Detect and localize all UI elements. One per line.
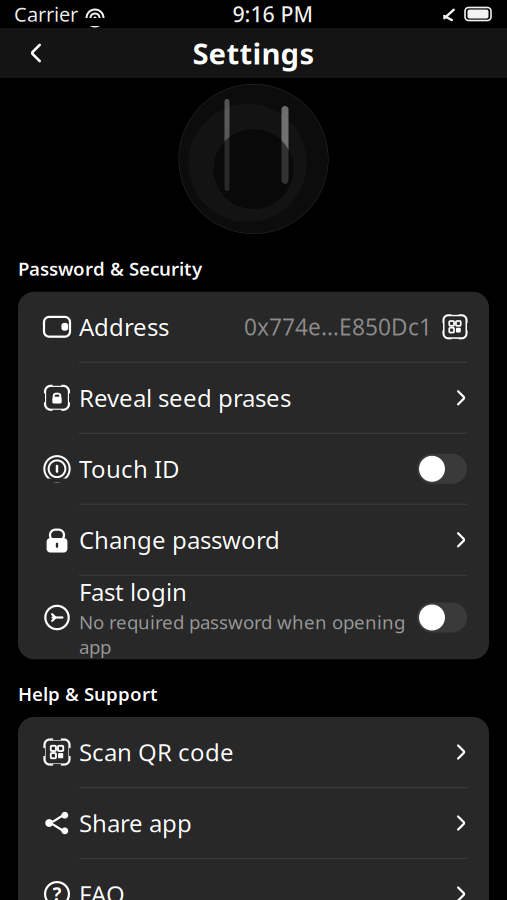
staticText: FAQ [79, 878, 125, 900]
staticText: 9:16 PM [232, 0, 313, 28]
staticText: ? [52, 882, 61, 900]
button[interactable]: Back [14, 31, 58, 75]
button[interactable]: Fast login [18, 576, 489, 659]
staticText: Help & Support [18, 681, 158, 706]
staticText: Change password [79, 524, 280, 556]
staticText: Reveal seed prases [79, 382, 291, 414]
staticText: Address [79, 311, 169, 343]
button[interactable]: Touch ID [18, 434, 489, 504]
staticText: Carrier [14, 1, 78, 27]
button[interactable]: Share app [18, 788, 489, 858]
staticText: Scan QR code [79, 736, 234, 768]
button[interactable]: Scan QR code [18, 717, 489, 787]
staticText: No required password when opening app [79, 610, 405, 659]
staticText: Share app [79, 807, 192, 839]
button[interactable]: Change password [18, 505, 489, 575]
staticText: Touch ID [79, 453, 180, 485]
staticText: Password & Security [18, 256, 202, 281]
button[interactable]: Address [18, 292, 489, 362]
button[interactable]: Reveal seed prases [18, 363, 489, 433]
staticText: Fast login [79, 576, 187, 608]
staticText: Settings [192, 33, 314, 72]
button[interactable]: ? [18, 859, 489, 900]
staticText: 0x774e…E850Dc1 [244, 312, 432, 342]
